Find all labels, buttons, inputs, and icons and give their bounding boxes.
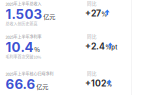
staticText: 总收入创历史新高: [5, 21, 37, 27]
staticText: 同比: [87, 33, 97, 40]
staticText: 66.6: [5, 76, 35, 92]
staticText: 亿元: [43, 12, 55, 21]
staticText: %: [34, 45, 40, 54]
staticText: %: [106, 81, 112, 88]
staticText: 2025年上半年总收入: [5, 1, 41, 7]
staticText: 同比: [87, 0, 97, 7]
staticText: 2025年上半年净利率: [5, 34, 41, 40]
staticText: %pt: [105, 44, 117, 51]
staticText: %: [101, 11, 107, 18]
staticText: 2025年上半年核心归母净利: [5, 71, 53, 77]
staticText: +27: [85, 8, 101, 18]
staticText: 1.503: [5, 6, 42, 22]
staticText: 10.4: [5, 39, 33, 55]
staticText: 毛利率首次突破10%: [5, 54, 41, 60]
staticText: 同比: [87, 70, 97, 77]
staticText: +2.4: [85, 41, 105, 51]
staticText: 亿元: [36, 82, 48, 91]
staticText: +102: [85, 78, 106, 88]
